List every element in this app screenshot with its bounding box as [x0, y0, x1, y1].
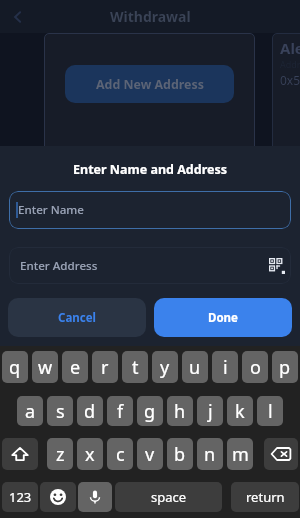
staticText: space [151, 488, 187, 506]
staticText: e [70, 355, 81, 380]
button[interactable]: Shift [2, 438, 38, 470]
button[interactable]: Scan QR code [269, 258, 285, 274]
button[interactable]: i [212, 351, 238, 383]
button[interactable]: c [107, 438, 133, 470]
staticText: 123 [9, 488, 32, 506]
button[interactable]: v [137, 438, 163, 470]
button[interactable]: f [107, 396, 133, 426]
staticText: u [189, 355, 201, 380]
button[interactable]: space [115, 482, 222, 512]
staticText: p [279, 355, 291, 380]
staticText: l [268, 399, 273, 424]
staticText: m [232, 442, 249, 467]
staticText: Withdrawal [110, 7, 191, 26]
button[interactable]: j [197, 396, 223, 426]
button[interactable]: return [231, 482, 299, 512]
button[interactable]: Enter Address [9, 247, 291, 284]
button[interactable]: m [227, 438, 253, 470]
button[interactable]: Enter Name [9, 191, 291, 229]
staticText: t [132, 355, 139, 380]
staticText: Done [208, 310, 238, 326]
staticText: q [9, 355, 21, 380]
staticText: g [144, 399, 156, 424]
staticText: d [84, 399, 96, 424]
button[interactable]: e [62, 351, 88, 383]
staticText: k [235, 399, 245, 424]
button[interactable]: r [92, 351, 118, 383]
button[interactable]: z [47, 438, 73, 470]
staticText: n [204, 442, 216, 467]
button[interactable]: o [242, 351, 268, 383]
staticText: Add New Address [96, 76, 204, 93]
button[interactable]: Voice input [78, 482, 112, 512]
button[interactable]: p [272, 351, 298, 383]
button[interactable]: s [47, 396, 73, 426]
staticText: i [223, 355, 228, 380]
button[interactable]: Back [5, 5, 29, 29]
button[interactable]: g [137, 396, 163, 426]
button[interactable]: b [167, 438, 193, 470]
staticText: c [116, 442, 125, 467]
staticText: Enter Name [18, 202, 85, 218]
staticText: w [38, 355, 53, 380]
staticText: Cancel [58, 310, 96, 326]
staticText: Alex [280, 38, 300, 58]
button[interactable]: k [227, 396, 253, 426]
staticText: a [25, 399, 36, 424]
staticText: s [56, 399, 65, 424]
staticText: Enter Name and Address [0, 161, 300, 178]
button[interactable]: Emoji [40, 482, 76, 512]
staticText: h [174, 399, 186, 424]
staticText: x [85, 442, 95, 467]
button[interactable]: Backspace [264, 438, 298, 470]
button[interactable]: 123 [2, 482, 38, 512]
button[interactable]: l [257, 396, 283, 426]
staticText: r [101, 355, 109, 380]
staticText: return [246, 488, 285, 506]
staticText: Enter Address [20, 258, 98, 274]
button[interactable]: d [77, 396, 103, 426]
button[interactable]: x [77, 438, 103, 470]
button[interactable]: Add New Address [44, 33, 255, 163]
button[interactable]: a [17, 396, 43, 426]
staticText: b [174, 442, 186, 467]
staticText: y [160, 355, 170, 380]
staticText: j [208, 399, 213, 424]
staticText: v [145, 442, 155, 467]
button[interactable]: Cancel [8, 298, 146, 337]
button[interactable]: h [167, 396, 193, 426]
staticText: Address [280, 58, 300, 70]
staticText: f [117, 399, 124, 424]
button[interactable]: y [152, 351, 178, 383]
staticText: z [56, 442, 65, 467]
button[interactable]: Alex [272, 33, 300, 163]
button[interactable]: u [182, 351, 208, 383]
staticText: 0x5ce4f2a9 [280, 72, 300, 88]
button[interactable]: w [32, 351, 58, 383]
button[interactable]: Done [154, 298, 292, 337]
staticText: o [250, 355, 261, 380]
button[interactable]: Add New Address [65, 65, 234, 103]
button[interactable]: t [122, 351, 148, 383]
button[interactable]: q [2, 351, 28, 383]
button[interactable]: n [197, 438, 223, 470]
